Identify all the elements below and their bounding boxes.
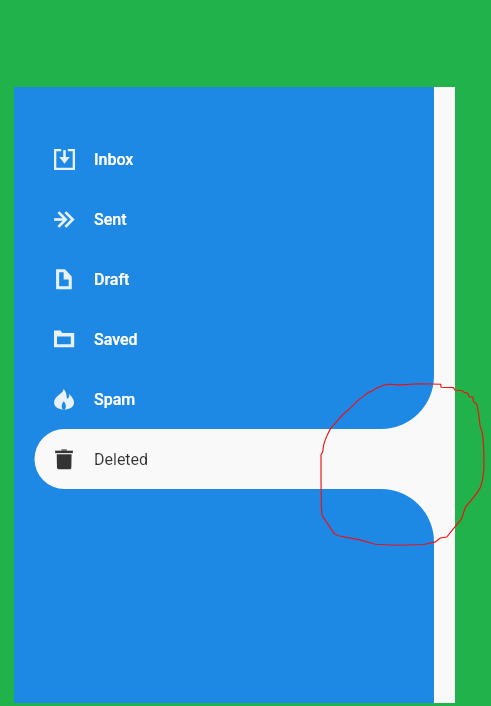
staticText: Saved — [94, 330, 138, 349]
staticText: Spam — [94, 390, 136, 409]
button[interactable]: Deleted — [14, 429, 455, 489]
staticText: Sent — [94, 210, 127, 229]
button[interactable]: Draft — [14, 249, 455, 309]
button[interactable]: Spam — [14, 369, 455, 429]
button[interactable]: Saved — [14, 309, 455, 369]
staticText: Deleted — [94, 450, 149, 469]
staticText: Inbox — [94, 150, 134, 169]
staticText: Draft — [94, 270, 130, 289]
button[interactable]: Sent — [14, 189, 455, 249]
button[interactable]: Inbox — [14, 129, 455, 189]
